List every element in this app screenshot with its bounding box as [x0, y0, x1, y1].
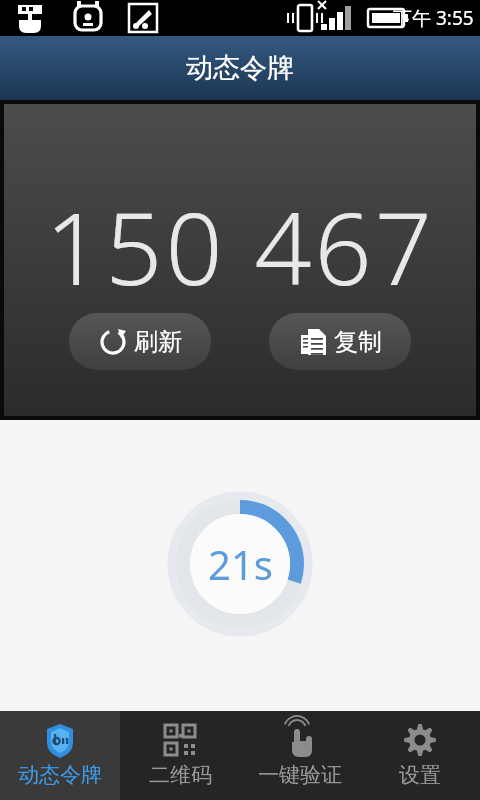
- staticText: 二维码: [149, 762, 212, 788]
- staticText: 刷新: [134, 327, 182, 357]
- staticText: 21s: [208, 537, 273, 591]
- staticText: 复制: [334, 327, 382, 357]
- staticText: 一键验证: [258, 762, 342, 788]
- staticText: 150 467: [4, 178, 476, 314]
- button[interactable]: 动态令牌: [0, 711, 120, 800]
- staticText: 动态令牌: [18, 762, 102, 788]
- staticText: 动态令牌: [186, 51, 294, 85]
- staticText: 设置: [399, 762, 441, 788]
- button[interactable]: 复制: [269, 313, 411, 370]
- button[interactable]: 二维码: [120, 711, 240, 800]
- button[interactable]: 设置: [360, 711, 480, 800]
- button[interactable]: 一键验证: [240, 711, 360, 800]
- staticText: 下午 3:55: [393, 5, 474, 31]
- button[interactable]: 刷新: [69, 313, 211, 370]
